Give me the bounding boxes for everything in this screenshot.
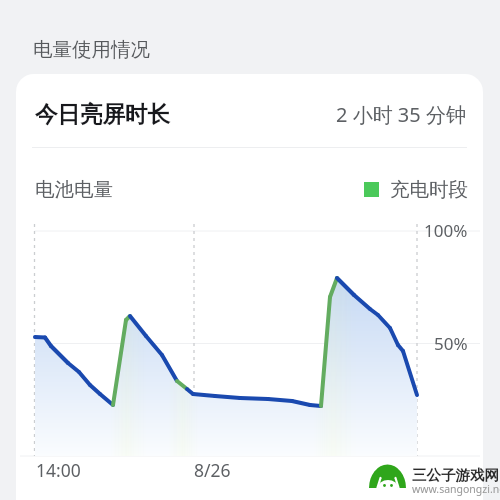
staticText: 今日亮屏时长 xyxy=(35,100,170,128)
staticText: 100% xyxy=(424,219,468,242)
staticText: 2 小时 35 分钟 xyxy=(336,101,466,128)
staticText: 电池电量 xyxy=(35,177,113,202)
staticText: 50% xyxy=(434,332,468,355)
button[interactable]: 今日亮屏时长 xyxy=(16,74,483,154)
staticText: 电量使用情况 xyxy=(33,37,150,62)
staticText: 8/26 xyxy=(194,458,231,482)
staticText: www.sangongzi.net xyxy=(412,482,500,496)
staticText: 三公子游戏网 xyxy=(412,466,499,484)
staticText: 14:00 xyxy=(36,458,81,482)
staticText: 充电时段 xyxy=(390,177,468,202)
